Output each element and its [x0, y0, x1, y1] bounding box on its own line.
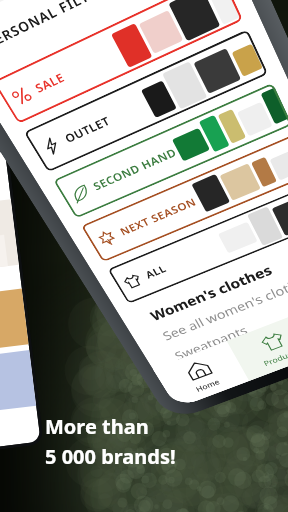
- button[interactable]: Home: [153, 341, 249, 408]
- staticText: SALE: [32, 69, 67, 96]
- staticText: Women's clothes: [147, 261, 275, 324]
- staticText: Home: [194, 377, 222, 394]
- staticText: OUTLET: [62, 113, 113, 145]
- staticText: Sweatpants: [171, 322, 251, 364]
- button[interactable]: SECOND HAND: [53, 83, 288, 218]
- staticText: 5 000 brands!: [45, 443, 176, 470]
- button[interactable]: OUTLET: [24, 29, 268, 172]
- staticText: ALL: [143, 262, 169, 281]
- button[interactable]: Search products: [0, 0, 191, 23]
- staticText: SECOND HAND: [90, 144, 179, 193]
- button[interactable]: Products: [227, 312, 288, 381]
- button[interactable]: SALE: [0, 0, 243, 124]
- staticText: PERSONAL FILTERS: [0, 0, 117, 52]
- staticText: See all women's clothes: [159, 271, 288, 344]
- button[interactable]: NEXT SEASON: [81, 133, 288, 262]
- staticText: Products: [262, 346, 288, 368]
- staticText: More than: [45, 413, 149, 440]
- button[interactable]: ALL: [107, 181, 288, 304]
- staticText: NEXT SEASON: [117, 194, 199, 238]
- staticText: Search products: [0, 0, 56, 9]
